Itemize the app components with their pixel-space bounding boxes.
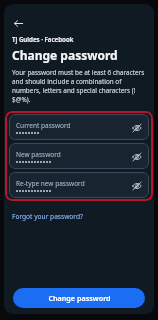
staticText: Change password (12, 47, 118, 63)
staticText: Tj Guides · Facebook (12, 35, 74, 43)
button[interactable]: Re-type new password (9, 172, 149, 198)
button[interactable]: Show Current password (130, 121, 143, 134)
staticText: Your password must be at least 6 charact… (12, 68, 146, 104)
staticText: Current password (16, 121, 71, 130)
button[interactable]: Current password (9, 114, 149, 140)
button[interactable]: Back (9, 14, 27, 32)
staticText: New password (16, 150, 61, 159)
staticText: Forgot your password? (12, 212, 83, 221)
staticText: Change password (48, 293, 111, 303)
button[interactable]: Forgot your password? (12, 212, 83, 221)
button[interactable]: Show New password (130, 150, 143, 163)
button[interactable]: Change password (13, 288, 145, 308)
staticText: Re-type new password (16, 179, 85, 188)
button[interactable]: Show Re-type new password (130, 179, 143, 192)
button[interactable]: New password (9, 143, 149, 169)
